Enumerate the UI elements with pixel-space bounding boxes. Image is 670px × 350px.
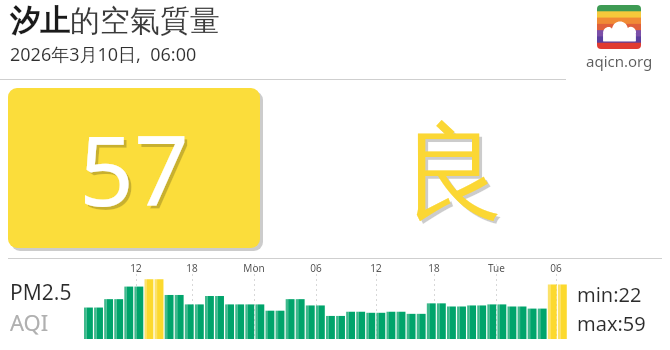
staticText: Tue <box>488 261 505 275</box>
button[interactable]: PM2.5 AQI history chart <box>84 262 568 339</box>
staticText: 的空氣質量 <box>70 2 220 40</box>
staticText: 良 <box>404 111 508 241</box>
staticText: 18 <box>186 261 198 275</box>
button[interactable]: 57 <box>8 88 260 248</box>
staticText: 良 <box>401 108 505 238</box>
staticText: aqicn.org <box>586 51 653 71</box>
staticText: Mon <box>243 261 265 275</box>
staticText: 2026年3月10日, 06:00 <box>10 42 197 67</box>
button[interactable]: aqicn.org logo <box>597 5 641 49</box>
staticText: 57 <box>82 106 192 237</box>
staticText: max:59 <box>577 310 646 337</box>
staticText: 57 <box>79 103 189 234</box>
staticText: PM2.5 <box>10 278 72 307</box>
staticText: AQI <box>10 307 49 337</box>
staticText: 12 <box>370 261 382 275</box>
staticText: 06 <box>550 261 562 275</box>
staticText: 18 <box>428 261 440 275</box>
staticText: 06 <box>310 261 322 275</box>
staticText: 汐止 <box>10 2 70 40</box>
staticText: 12 <box>130 261 142 275</box>
staticText: min:22 <box>577 281 642 308</box>
